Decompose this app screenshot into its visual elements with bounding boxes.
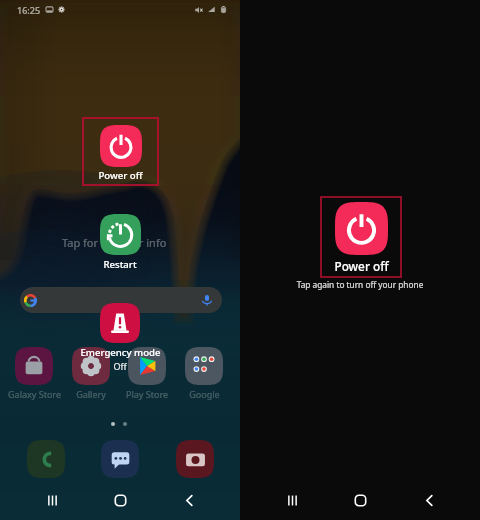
staticText: Tap for weather info	[62, 235, 167, 250]
button[interactable]: Emergency mode	[70, 303, 170, 372]
staticText: Power off	[98, 169, 143, 182]
button[interactable]: Back	[412, 483, 446, 517]
staticText: Google	[189, 388, 220, 400]
button[interactable]	[27, 440, 65, 478]
button[interactable]: Recents	[275, 483, 309, 517]
button[interactable]: Gallery	[62, 347, 120, 400]
button[interactable]: Power off	[83, 118, 158, 185]
button[interactable]: Power off	[321, 197, 401, 277]
button[interactable]	[176, 440, 214, 478]
button[interactable]: Restart	[80, 214, 160, 271]
button[interactable]: Back	[172, 483, 206, 517]
button[interactable]	[101, 440, 139, 478]
button[interactable]: Galaxy Store	[5, 347, 63, 400]
staticText: Off	[113, 360, 127, 372]
button[interactable]: Google	[175, 347, 233, 400]
staticText: Play Store	[126, 388, 168, 400]
staticText: Restart	[103, 258, 137, 271]
staticText: 16:25	[17, 4, 41, 16]
staticText: Tap again to turn off your phone	[240, 279, 480, 290]
staticText: Power off	[334, 258, 389, 274]
staticText: Galaxy Store	[8, 388, 61, 400]
button[interactable]: Home	[103, 483, 137, 517]
button[interactable]	[20, 287, 222, 313]
button[interactable]: Play Store	[118, 347, 176, 400]
staticText: Gallery	[76, 388, 106, 400]
button[interactable]: Home	[343, 483, 377, 517]
button[interactable]: Recents	[35, 483, 69, 517]
staticText: Emergency mode	[80, 346, 161, 359]
